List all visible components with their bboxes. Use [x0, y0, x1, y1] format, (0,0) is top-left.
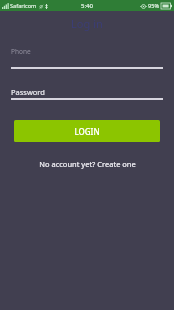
staticText: No account yet? Create one [39, 159, 136, 169]
button[interactable]: Phone [0, 47, 174, 69]
button[interactable]: LOGIN [14, 120, 160, 142]
staticText: LOGIN [74, 126, 100, 137]
staticText: 95% [148, 2, 160, 10]
button[interactable]: No account yet? Create one [0, 156, 174, 172]
button[interactable]: Password [0, 87, 174, 100]
staticText: Log in [71, 16, 103, 31]
staticText: 5:40 [81, 2, 93, 10]
staticText: Password [11, 87, 45, 97]
staticText: Phone [11, 47, 31, 56]
staticText: Safaricom [10, 2, 37, 10]
